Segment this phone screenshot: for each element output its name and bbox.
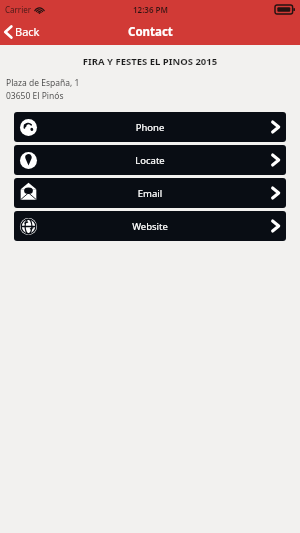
staticText: 12:36 PM (133, 4, 168, 15)
other: Email (20, 185, 37, 202)
staticText: 03650 El Pinós (6, 90, 64, 102)
staticText: Website (14, 220, 286, 233)
staticText: Back (15, 24, 40, 39)
other: Website (20, 218, 37, 235)
other: Locate (20, 152, 37, 169)
staticText: Email (14, 187, 286, 200)
staticText: Phone (14, 121, 286, 134)
button[interactable]: Back (0, 18, 48, 45)
button[interactable]: Phone (14, 112, 286, 142)
button[interactable]: Locate (14, 145, 286, 175)
staticText: Plaza de España, 1 (6, 77, 80, 89)
staticText: FIRA Y FESTES EL PINOS 2015 (0, 55, 300, 68)
staticText: Locate (14, 154, 286, 167)
button[interactable]: Website (14, 211, 286, 241)
staticText: Carrier (5, 4, 32, 15)
other: Phone (20, 119, 37, 136)
staticText: Contact (128, 24, 173, 40)
button[interactable]: Email (14, 178, 286, 208)
